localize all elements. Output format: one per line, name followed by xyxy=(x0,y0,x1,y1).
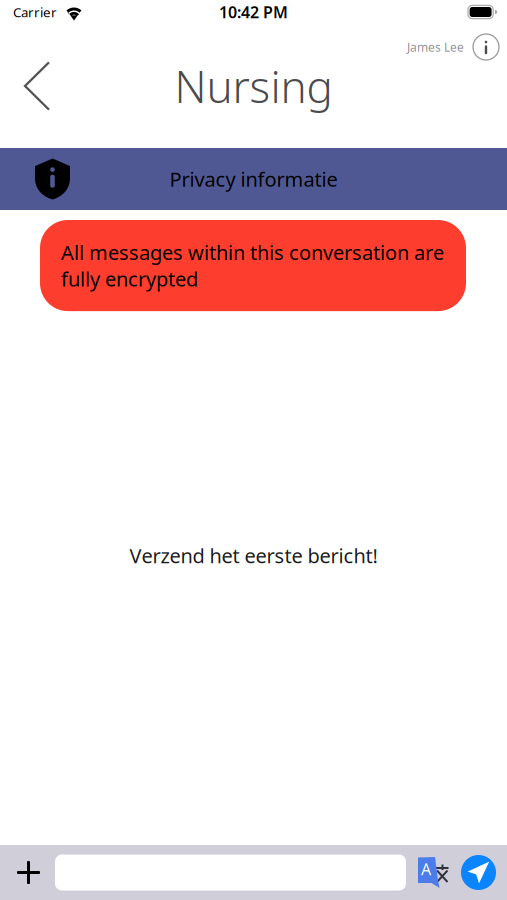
staticText: A xyxy=(421,858,431,880)
staticText: Carrier xyxy=(13,3,57,21)
button[interactable]: Conversation info xyxy=(407,30,507,64)
staticText: Privacy informatie xyxy=(169,166,337,192)
staticText: 10:42 PM xyxy=(219,1,288,23)
button[interactable]: Send xyxy=(458,846,507,899)
staticText: All messages within this conversation ar… xyxy=(61,239,444,292)
button[interactable]: Privacy informatie xyxy=(0,148,507,210)
button[interactable]: Message xyxy=(55,854,406,890)
button[interactable]: Add attachment xyxy=(0,847,55,898)
button[interactable]: Translate xyxy=(406,845,458,899)
staticText: Nursing xyxy=(174,57,332,115)
button[interactable]: Back xyxy=(0,53,66,119)
staticText: James Lee xyxy=(407,39,464,55)
staticText: Verzend het eerste bericht! xyxy=(129,542,377,569)
